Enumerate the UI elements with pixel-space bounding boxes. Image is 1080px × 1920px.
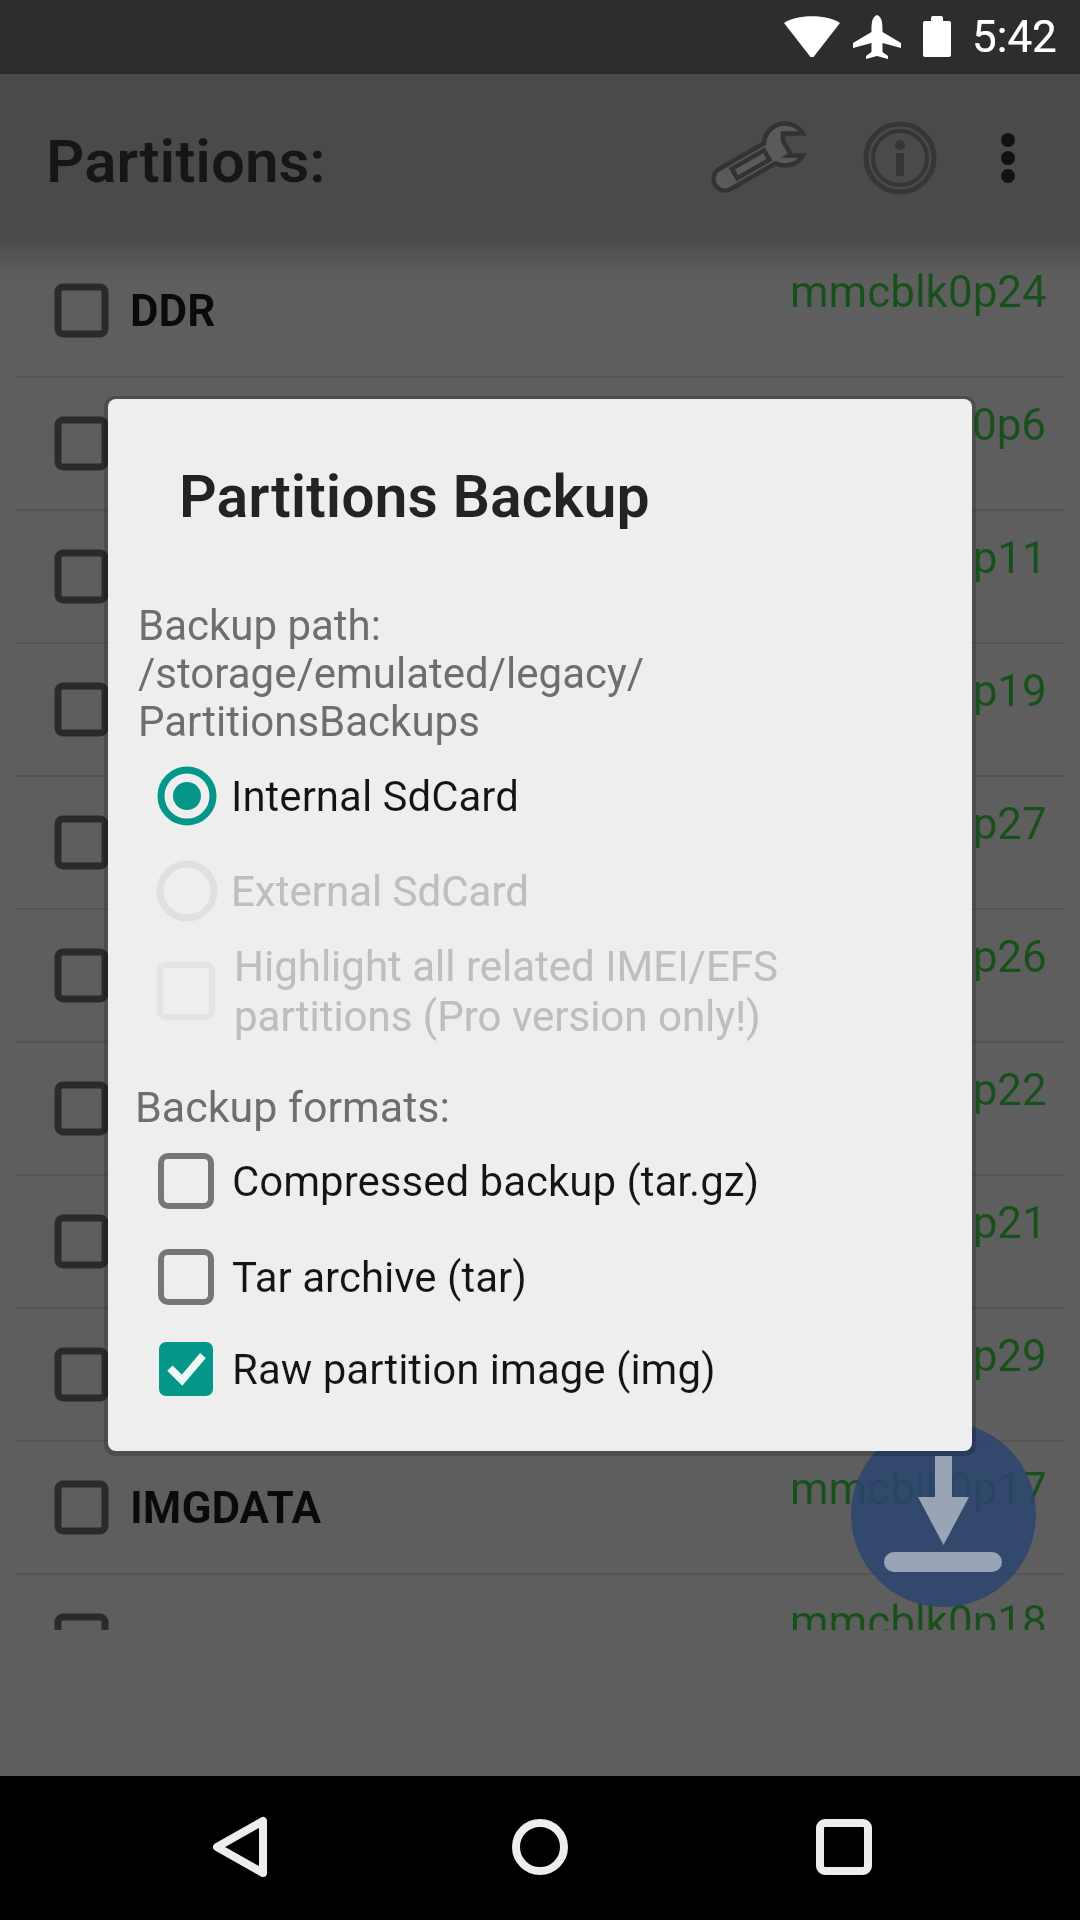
- button[interactable]: IMGDATA: [0, 1442, 1080, 1575]
- button[interactable]: Raw partition image (img): [108, 1335, 972, 1403]
- button[interactable]: Tools: [685, 88, 835, 229]
- button[interactable]: mmcblk0p18: [0, 1575, 1080, 1630]
- button[interactable]: More options: [948, 98, 1068, 218]
- button[interactable]: Recents: [774, 1777, 914, 1917]
- button[interactable]: Back: [170, 1777, 310, 1917]
- button[interactable]: Home: [470, 1777, 610, 1917]
- staticText: Raw partition image (img): [232, 1345, 716, 1394]
- staticText: 5:42: [972, 11, 1057, 63]
- staticText: DDR: [130, 285, 216, 337]
- button[interactable]: Highlight all related IMEI/EFS partition…: [108, 933, 972, 1049]
- button[interactable]: mmcblk0p19: [0, 644, 1080, 777]
- staticText: mmcblk0p21: [790, 1197, 1047, 1249]
- button[interactable]: Info: [830, 88, 970, 228]
- button[interactable]: mmcblk0p27: [0, 777, 1080, 910]
- staticText: Backup formats:: [135, 1082, 450, 1132]
- button[interactable]: Tar archive (tar): [108, 1243, 972, 1311]
- button[interactable]: Internal SdCard: [108, 762, 972, 830]
- staticText: Internal SdCard: [231, 772, 519, 821]
- staticText: mmcblk0p22: [790, 1064, 1047, 1116]
- staticText: mmcblk0p26: [790, 931, 1047, 983]
- staticText: mmcblk0p17: [790, 1463, 1047, 1515]
- button[interactable]: mmcblk0p29: [0, 1309, 1080, 1442]
- staticText: mmcblk0p11: [790, 532, 1047, 584]
- staticText: Partitions Backup: [179, 462, 650, 531]
- staticText: mmcblk0p27: [790, 798, 1047, 850]
- button[interactable]: mmcblk0p22: [0, 1043, 1080, 1176]
- button[interactable]: mmcblk0p11: [0, 511, 1080, 644]
- staticText: mmcblk0p29: [790, 1330, 1047, 1382]
- button[interactable]: Compressed backup (tar.gz): [108, 1147, 972, 1215]
- staticText: Backup path: /storage/emulated/legacy/ P…: [138, 601, 645, 746]
- staticText: Highlight all related IMEI/EFS partition…: [234, 942, 778, 1041]
- staticText: External SdCard: [231, 867, 529, 916]
- staticText: mmcblk0p6: [814, 399, 1047, 451]
- button[interactable]: External SdCard: [108, 857, 972, 925]
- staticText: Compressed backup (tar.gz): [232, 1157, 760, 1206]
- button[interactable]: mmcblk0p21: [0, 1176, 1080, 1309]
- staticText: mmcblk0p24: [790, 266, 1047, 318]
- button[interactable]: mmcblk0p6: [0, 378, 1080, 511]
- button[interactable]: mmcblk0p26: [0, 910, 1080, 1043]
- staticText: Tar archive (tar): [232, 1253, 527, 1302]
- button[interactable]: DDR: [0, 245, 1080, 378]
- staticText: mmcblk0p18: [790, 1596, 1047, 1630]
- staticText: Partitions:: [46, 126, 326, 196]
- button[interactable]: Backup: [851, 1422, 1036, 1607]
- staticText: IMGDATA: [130, 1482, 321, 1534]
- staticText: mmcblk0p19: [790, 665, 1047, 717]
